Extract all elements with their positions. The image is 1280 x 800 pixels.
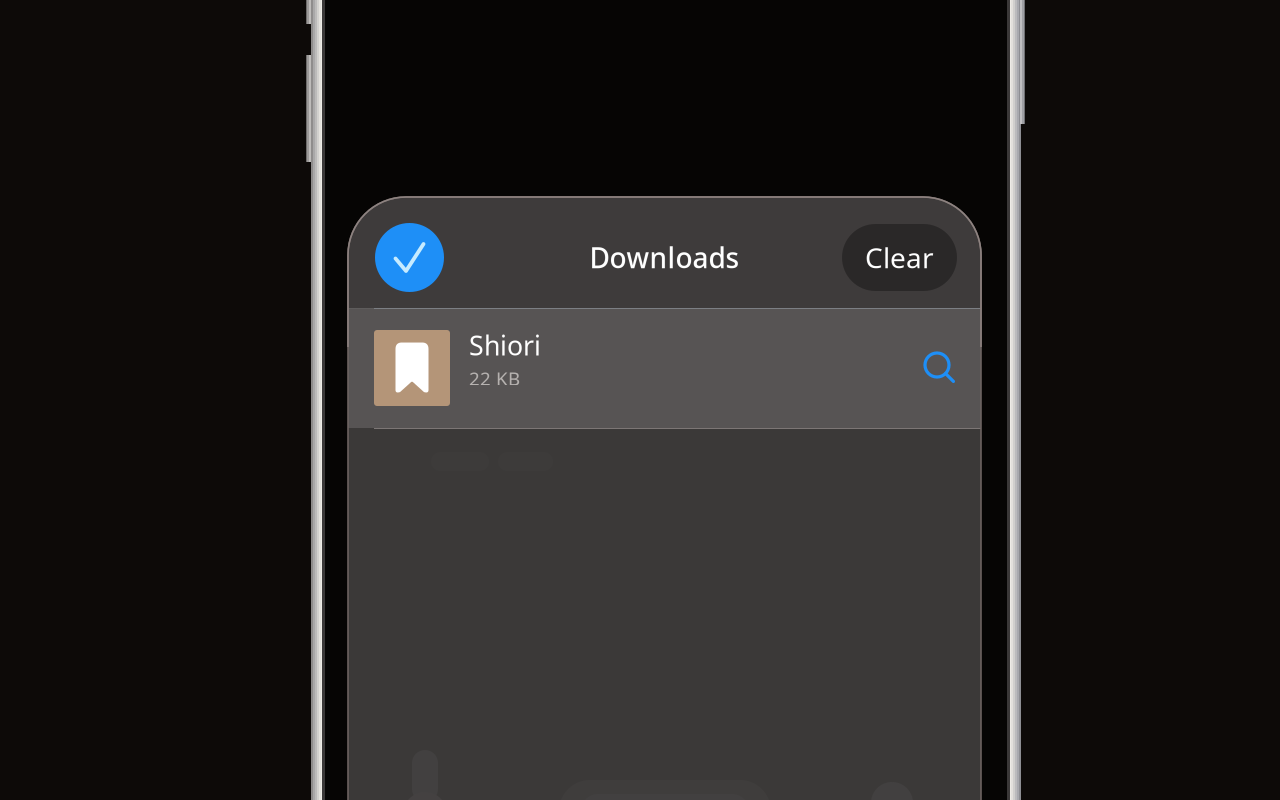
staticText: Downloads <box>589 239 739 276</box>
button[interactable]: Clear <box>842 224 957 291</box>
button[interactable]: Reveal in Files <box>914 308 955 428</box>
button[interactable]: Shiori <box>374 308 914 428</box>
staticText: 22 KB <box>469 366 520 391</box>
button[interactable]: Select all <box>375 223 444 292</box>
staticText: Shiori <box>469 327 541 363</box>
staticText: Clear <box>865 239 934 276</box>
